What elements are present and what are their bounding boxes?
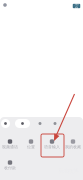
staticText: 消息 bbox=[74, 1, 78, 11]
button[interactable]: Tool bbox=[15, 119, 30, 128]
button[interactable]: Tool bbox=[50, 119, 59, 128]
button[interactable]: 视频通话 bbox=[0, 137, 20, 150]
button[interactable]: Avatar bbox=[3, 3, 7, 7]
staticText: 语音输入 bbox=[44, 144, 60, 149]
staticText: 我的收藏 bbox=[65, 144, 81, 149]
button[interactable]: Tool bbox=[35, 119, 44, 128]
button[interactable]: 我的收藏 bbox=[63, 137, 83, 150]
button[interactable]: Tool bbox=[1, 119, 10, 128]
button[interactable]: 位置 bbox=[21, 137, 41, 150]
button[interactable]: 语音输入 bbox=[42, 137, 62, 150]
staticText: 视频通话 bbox=[2, 144, 18, 149]
button[interactable]: Unread badge bbox=[73, 4, 80, 8]
staticText: 收付款 bbox=[4, 165, 16, 170]
staticText: 位置 bbox=[27, 144, 35, 149]
button[interactable]: 收付款 bbox=[0, 158, 20, 171]
